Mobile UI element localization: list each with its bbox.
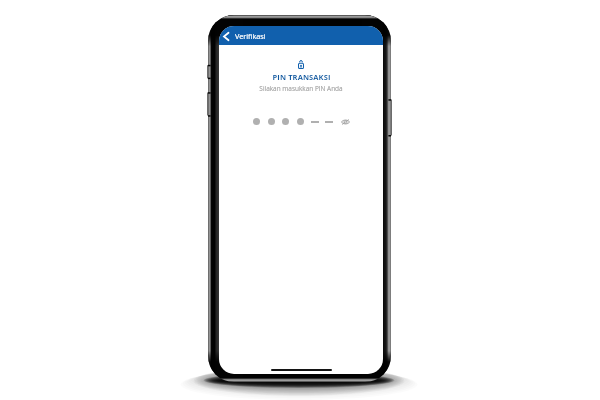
button[interactable]: Show PIN: [340, 116, 351, 127]
staticText: PIN TRANSAKSI: [272, 72, 331, 82]
staticText: Silakan masukkan PIN Anda: [259, 84, 343, 93]
staticText: Verifikasi: [235, 31, 266, 41]
button[interactable]: Back: [220, 31, 231, 42]
